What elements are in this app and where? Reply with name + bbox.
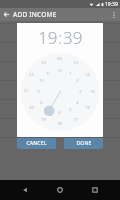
staticText: ADD INCOME: [13, 10, 57, 19]
staticText: 13: [73, 60, 78, 66]
staticText: 14: [85, 72, 90, 78]
button[interactable]: Home: [50, 180, 70, 200]
button[interactable]: CANCEL: [17, 138, 56, 149]
button[interactable]: Back: [15, 180, 35, 200]
staticText: 12: [57, 68, 62, 73]
button[interactable]: Clock face, select hour: [19, 51, 101, 133]
staticText: 5: [69, 107, 72, 112]
staticText: 23: [41, 60, 46, 66]
button[interactable]: More options: [107, 8, 120, 21]
staticText: 9: [37, 89, 40, 94]
staticText: 18: [57, 121, 62, 127]
staticText: 16: [85, 105, 90, 111]
staticText: 19:39: [105, 1, 118, 8]
staticText: 22: [29, 72, 34, 78]
staticText: DONE: [76, 140, 92, 147]
staticText: 20: [29, 105, 34, 111]
button[interactable]: 19: [38, 26, 58, 49]
staticText: :: [58, 26, 63, 49]
staticText: 19: [41, 117, 46, 123]
button[interactable]: DONE: [64, 138, 103, 149]
staticText: 6: [58, 110, 61, 115]
button[interactable]: Navigate up: [0, 8, 13, 21]
button[interactable]: 39: [63, 26, 83, 49]
staticText: 1: [69, 71, 72, 76]
staticText: 3: [79, 89, 82, 94]
button[interactable]: Recent apps: [85, 180, 105, 200]
staticText: 15: [90, 89, 95, 95]
staticText: 11: [46, 71, 51, 76]
staticText: 2: [76, 78, 79, 83]
staticText: 8: [40, 100, 43, 105]
staticText: 10: [39, 78, 44, 83]
staticText: 17: [73, 117, 78, 123]
staticText: 00: [57, 56, 62, 62]
staticText: CANCEL: [26, 140, 47, 147]
staticText: 21: [24, 88, 29, 94]
staticText: 4: [76, 100, 79, 105]
